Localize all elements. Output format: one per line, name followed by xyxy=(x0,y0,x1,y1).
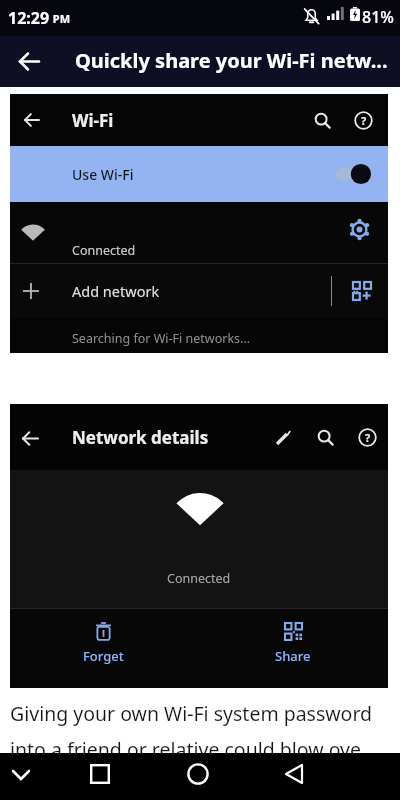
staticText: PM xyxy=(50,11,71,26)
button[interactable]: Forget xyxy=(53,613,153,683)
staticText: Quickly share your Wi-Fi netw... xyxy=(75,47,388,74)
button[interactable] xyxy=(90,764,110,784)
staticText: Wi-Fi xyxy=(72,109,114,132)
button[interactable]: Share xyxy=(243,613,343,683)
button[interactable]: ? xyxy=(358,428,377,447)
staticText: Add network xyxy=(72,281,160,301)
staticText: 81% xyxy=(362,6,394,28)
button[interactable]: Connected xyxy=(10,202,388,263)
staticText: Giving your own Wi-Fi system password xyxy=(10,700,373,727)
staticText: Network details xyxy=(72,426,209,449)
staticText: Use Wi-Fi xyxy=(72,165,134,184)
staticText: Forget xyxy=(83,647,124,665)
button[interactable] xyxy=(21,429,40,448)
staticText: 12:29 xyxy=(8,7,50,29)
button[interactable] xyxy=(349,219,370,240)
staticText: into a friend or relative could blow ove xyxy=(10,736,361,763)
button[interactable] xyxy=(336,163,372,185)
button[interactable]: Use Wi-Fi xyxy=(10,146,388,202)
button[interactable]: ? xyxy=(354,111,373,130)
button[interactable] xyxy=(23,111,41,129)
staticText: ? xyxy=(365,430,371,445)
button[interactable] xyxy=(317,429,334,446)
button[interactable]: Add network xyxy=(10,264,388,318)
staticText: ? xyxy=(361,113,367,128)
button[interactable] xyxy=(187,763,209,785)
staticText: Share xyxy=(275,647,311,665)
staticText: Searching for Wi-Fi networks... xyxy=(72,330,251,347)
button[interactable] xyxy=(274,429,292,447)
button[interactable] xyxy=(284,763,306,785)
button[interactable] xyxy=(18,50,41,73)
button[interactable] xyxy=(12,769,30,781)
staticText: Connected xyxy=(167,570,231,587)
button[interactable] xyxy=(353,282,371,300)
button[interactable] xyxy=(314,112,331,129)
staticText: Connected xyxy=(72,242,136,259)
